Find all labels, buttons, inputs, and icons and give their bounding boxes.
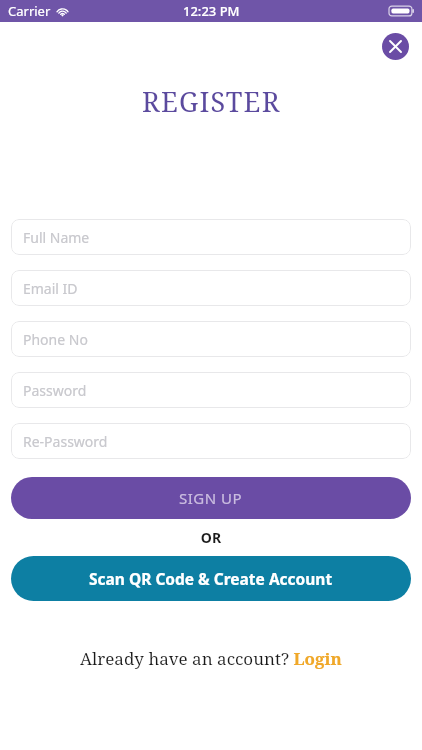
button[interactable]: Email ID bbox=[11, 270, 411, 306]
button[interactable]: Password bbox=[11, 372, 411, 408]
button[interactable]: Full Name bbox=[11, 219, 411, 255]
button[interactable]: Re-Password bbox=[11, 423, 411, 459]
staticText: REGISTER bbox=[142, 83, 281, 120]
staticText: Already have an account? Login bbox=[80, 647, 342, 670]
staticText: Phone No bbox=[23, 330, 88, 349]
button[interactable]: Close bbox=[382, 33, 409, 60]
staticText: SIGN UP bbox=[179, 488, 243, 508]
button[interactable]: Phone No bbox=[11, 321, 411, 357]
button[interactable]: Scan QR Code & Create Account bbox=[11, 556, 411, 601]
staticText: Email ID bbox=[23, 279, 78, 298]
staticText: Scan QR Code & Create Account bbox=[89, 568, 333, 589]
staticText: Carrier bbox=[8, 2, 51, 20]
staticText: 12:23 PM bbox=[183, 2, 240, 20]
staticText: Full Name bbox=[23, 228, 90, 247]
button[interactable]: SIGN UP bbox=[11, 477, 411, 519]
staticText: Password bbox=[23, 381, 87, 400]
button[interactable]: Already have an account? Login bbox=[74, 643, 348, 674]
staticText: Re-Password bbox=[23, 432, 108, 451]
staticText: OR bbox=[0, 528, 422, 547]
